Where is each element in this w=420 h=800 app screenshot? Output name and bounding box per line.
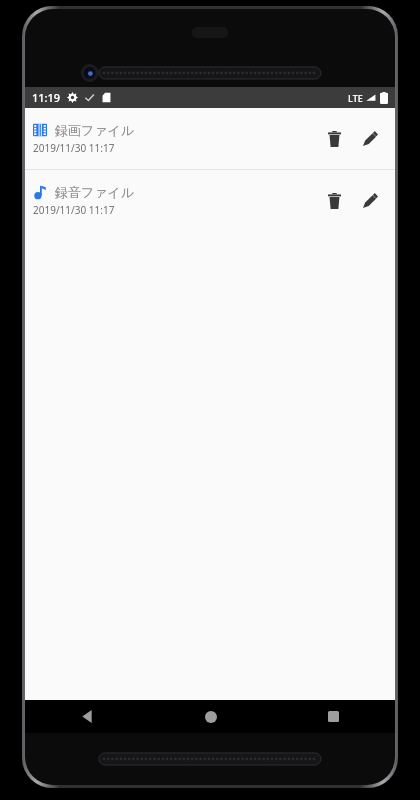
staticText: 録画ファイル (55, 122, 135, 138)
button[interactable]: Delete (317, 184, 351, 218)
staticText: 2019/11/30 11:17 (33, 141, 115, 155)
button[interactable]: Edit (353, 184, 387, 218)
button[interactable]: Home (149, 700, 272, 733)
staticText: 録音ファイル (55, 184, 135, 200)
staticText: 11:19 (32, 90, 61, 105)
button[interactable]: Back (25, 700, 149, 733)
button[interactable]: Delete (317, 122, 351, 156)
staticText: LTE (348, 92, 363, 104)
button[interactable]: Edit (353, 122, 387, 156)
button[interactable]: 録画ファイル (25, 108, 395, 169)
button[interactable]: 録音ファイル (25, 170, 395, 231)
button[interactable]: Recent apps (272, 700, 395, 733)
staticText: 2019/11/30 11:17 (33, 203, 115, 217)
